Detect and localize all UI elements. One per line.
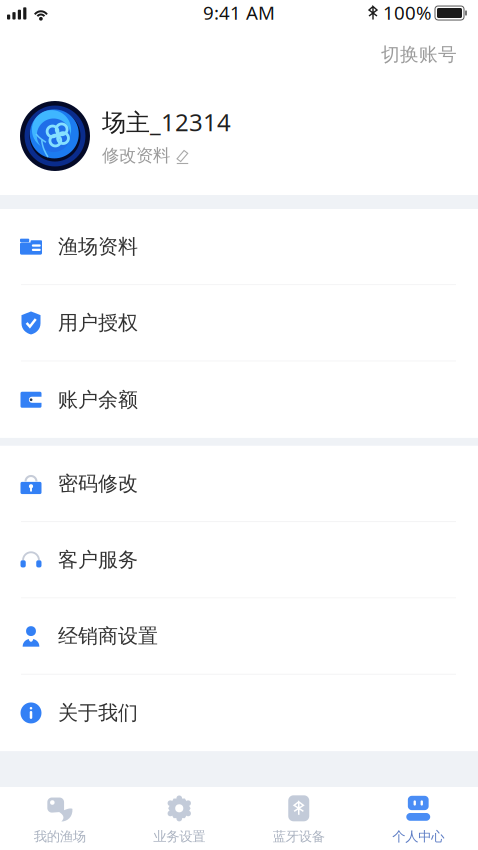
button[interactable]: 个人中心 [358,787,478,850]
button[interactable]: 密码修改 [0,446,478,522]
staticText: 场主_12314 [102,106,231,138]
staticText: 密码修改 [58,471,138,496]
staticText: 客户服务 [58,548,138,572]
staticText: 账户余额 [58,387,138,412]
button[interactable]: 客户服务 [0,522,478,598]
staticText: 关于我们 [58,701,138,725]
button[interactable]: 业务设置 [119,787,239,850]
staticText: 修改资料 [102,145,170,166]
button[interactable]: 我的渔场 [0,787,119,850]
staticText: 个人中心 [392,828,444,845]
button[interactable]: 账户余额 [0,362,478,438]
button[interactable]: 蓝牙设备 [239,787,358,850]
button[interactable]: 经销商设置 [0,598,478,675]
staticText: 100% [383,0,432,25]
staticText: 切换账号 [381,43,457,66]
staticText: 用户授权 [58,311,138,335]
staticText: 经销商设置 [58,624,158,648]
button[interactable]: 渔场资料 [0,209,478,285]
staticText: 渔场资料 [58,234,138,259]
staticText: 9:41 AM [203,0,275,25]
staticText: 业务设置 [153,828,205,845]
button[interactable]: 用户授权 [0,285,478,362]
button[interactable]: 切换账号 [381,26,478,73]
button[interactable]: 修改资料 [102,145,189,166]
staticText: 我的渔场 [34,828,86,845]
staticText: 蓝牙设备 [273,828,325,845]
button[interactable]: 关于我们 [0,675,478,751]
